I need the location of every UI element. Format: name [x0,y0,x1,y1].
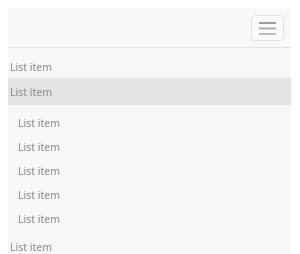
button[interactable]: Menu [251,15,284,41]
staticText: List item [18,116,60,130]
staticText: List item [10,85,52,99]
button[interactable]: List item [8,207,291,231]
button[interactable]: List item [8,111,291,135]
button[interactable]: List item [8,56,291,78]
staticText: List item [18,188,60,202]
button[interactable]: List item [8,78,291,105]
button[interactable]: List item [8,159,291,183]
staticText: List item [10,240,52,254]
staticText: List item [18,164,60,178]
button[interactable]: List item [8,135,291,159]
staticText: List item [18,212,60,226]
button[interactable]: List item [8,183,291,207]
staticText: List item [10,60,52,74]
staticText: List item [18,140,60,154]
button[interactable]: List item [8,240,291,254]
